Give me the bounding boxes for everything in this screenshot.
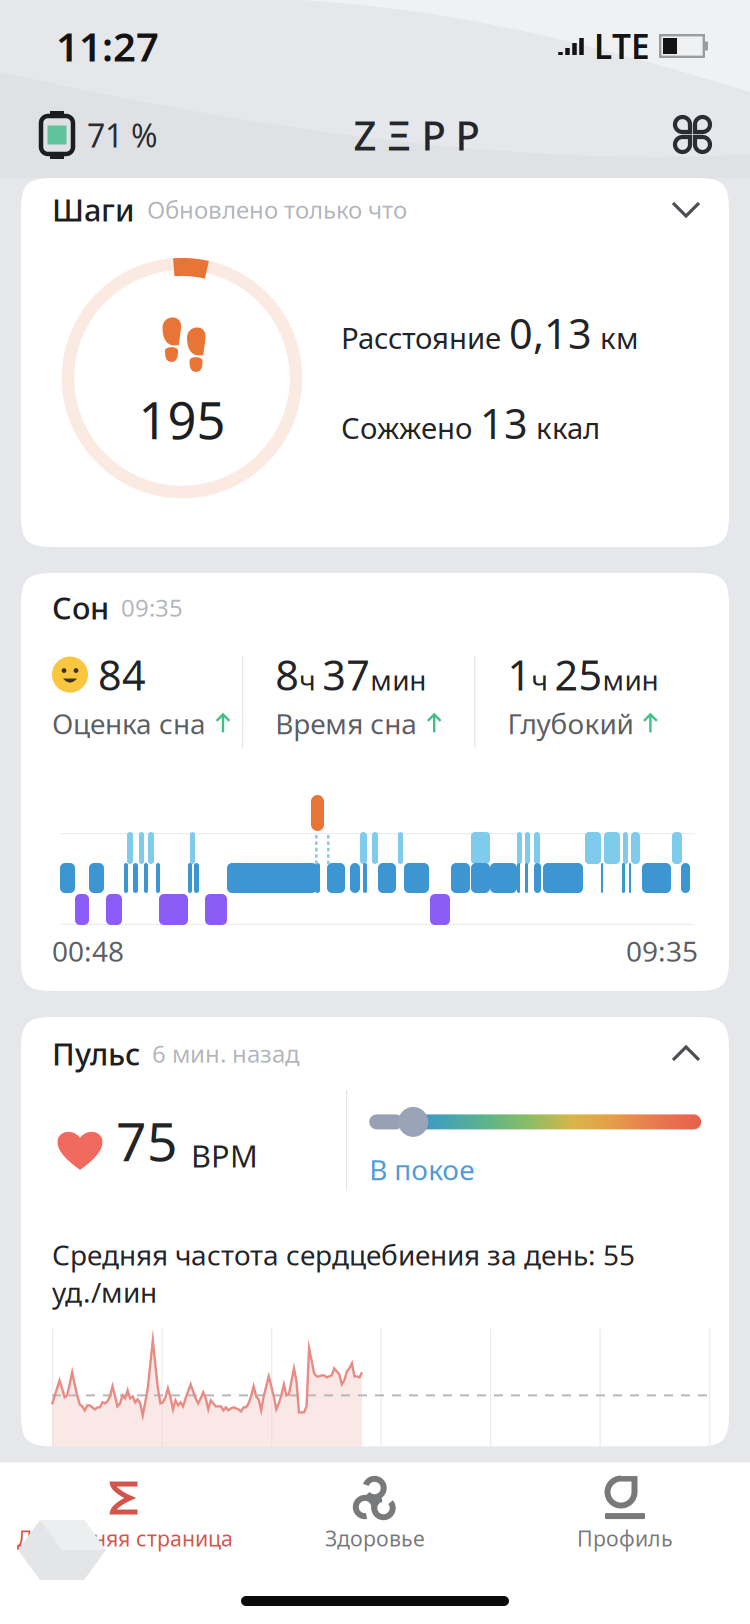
staticText: 0,13 bbox=[509, 306, 592, 360]
staticText: 09:35 bbox=[626, 932, 698, 970]
button[interactable]: Шаги bbox=[21, 178, 729, 241]
staticText: Пульс bbox=[52, 1033, 140, 1074]
staticText: ккал bbox=[528, 408, 600, 447]
staticText: 8 bbox=[275, 647, 299, 702]
staticText: 37 bbox=[322, 647, 370, 702]
staticText: мин bbox=[602, 661, 658, 698]
staticText: Расстояние bbox=[341, 318, 509, 357]
staticText: мин bbox=[370, 661, 426, 698]
staticText: 195 bbox=[138, 386, 225, 453]
staticText: км bbox=[592, 318, 639, 357]
staticText: Сожжено bbox=[341, 408, 480, 447]
staticText: 1 bbox=[507, 647, 531, 702]
staticText: 75 bbox=[116, 1105, 178, 1176]
button[interactable]: Домашняя страница bbox=[0, 1472, 250, 1558]
staticText: 84 bbox=[98, 647, 146, 702]
button[interactable]: Apps bbox=[675, 117, 710, 153]
staticText: Оценка сна bbox=[52, 705, 206, 742]
button[interactable]: Здоровье bbox=[250, 1472, 500, 1558]
staticText: Шаги bbox=[52, 189, 135, 230]
staticText: 11:27 bbox=[56, 19, 159, 72]
button[interactable]: 71 % bbox=[40, 110, 158, 160]
staticText: Средняя частота сердцебиения за день: 55… bbox=[52, 1236, 635, 1310]
staticText: ч bbox=[531, 661, 554, 698]
staticText: Время сна bbox=[275, 705, 417, 742]
button[interactable]: Пульс bbox=[21, 1017, 729, 1090]
staticText: 00:48 bbox=[52, 932, 124, 970]
staticText: Домашняя страница bbox=[17, 1524, 233, 1552]
staticText: BPM bbox=[191, 1135, 258, 1176]
staticText: ч bbox=[299, 661, 322, 698]
staticText: 6 мин. назад bbox=[152, 1038, 300, 1069]
staticText: Здоровье bbox=[325, 1524, 425, 1552]
staticText: В покое bbox=[369, 1151, 474, 1188]
staticText: 25 bbox=[554, 647, 602, 702]
staticText: Профиль bbox=[577, 1524, 673, 1552]
staticText: 71 % bbox=[87, 114, 158, 156]
staticText: 13 bbox=[480, 396, 528, 450]
staticText: Сон bbox=[52, 587, 109, 628]
staticText: Глубокий bbox=[507, 705, 633, 742]
staticText: Z Ξ P P bbox=[353, 108, 479, 161]
staticText: 09:35 bbox=[121, 592, 183, 623]
staticText: LTE bbox=[585, 24, 659, 68]
staticText: Обновлено только что bbox=[135, 194, 407, 225]
button[interactable]: Профиль bbox=[500, 1472, 750, 1558]
